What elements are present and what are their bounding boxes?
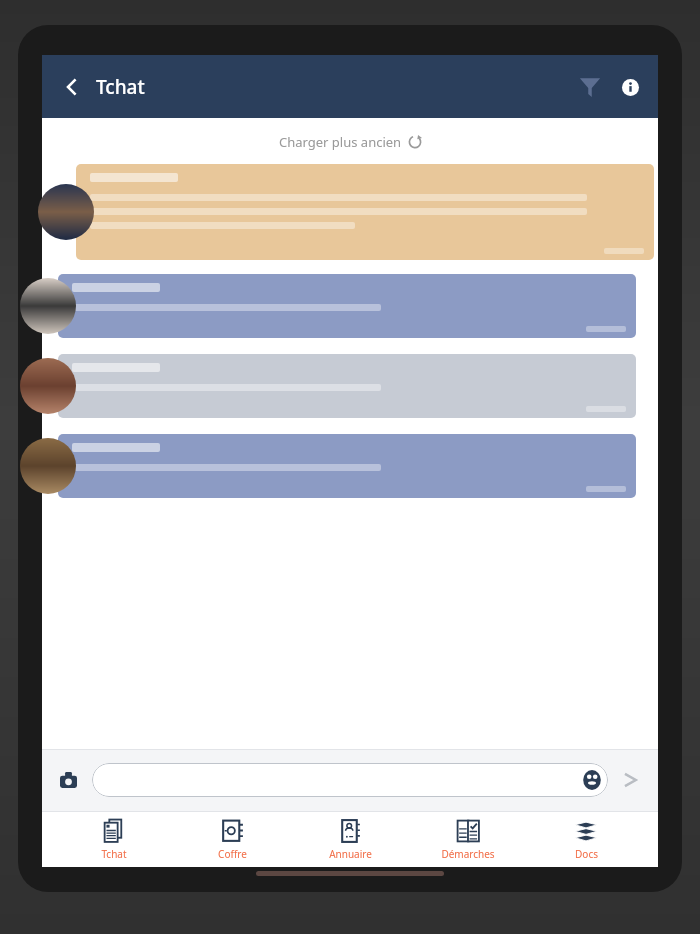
- button[interactable]: Camera: [48, 760, 88, 800]
- staticText: Démarches: [441, 847, 495, 861]
- button[interactable]: Annuaire: [304, 813, 396, 865]
- button[interactable]: Information: [612, 69, 648, 105]
- button[interactable]: Démarches: [422, 813, 514, 865]
- button[interactable]: [42, 434, 658, 498]
- button[interactable]: Contacts: [581, 769, 603, 791]
- staticText: Coffre: [218, 847, 247, 861]
- button[interactable]: [42, 354, 658, 418]
- button[interactable]: Filter: [570, 67, 610, 107]
- button[interactable]: Charger plus ancien: [42, 126, 658, 158]
- button[interactable]: Send: [608, 758, 652, 802]
- staticText: Tchat: [96, 74, 145, 100]
- button[interactable]: Back: [52, 67, 92, 107]
- button[interactable]: Docs: [540, 813, 632, 865]
- button[interactable]: Contacts: [92, 763, 608, 797]
- staticText: Annuaire: [329, 847, 372, 861]
- button[interactable]: [42, 164, 658, 260]
- button[interactable]: Coffre: [186, 813, 278, 865]
- button[interactable]: Tchat: [68, 813, 160, 865]
- staticText: Charger plus ancien: [279, 133, 402, 151]
- staticText: Docs: [575, 847, 598, 861]
- staticText: Tchat: [101, 847, 127, 861]
- button[interactable]: [42, 274, 658, 338]
